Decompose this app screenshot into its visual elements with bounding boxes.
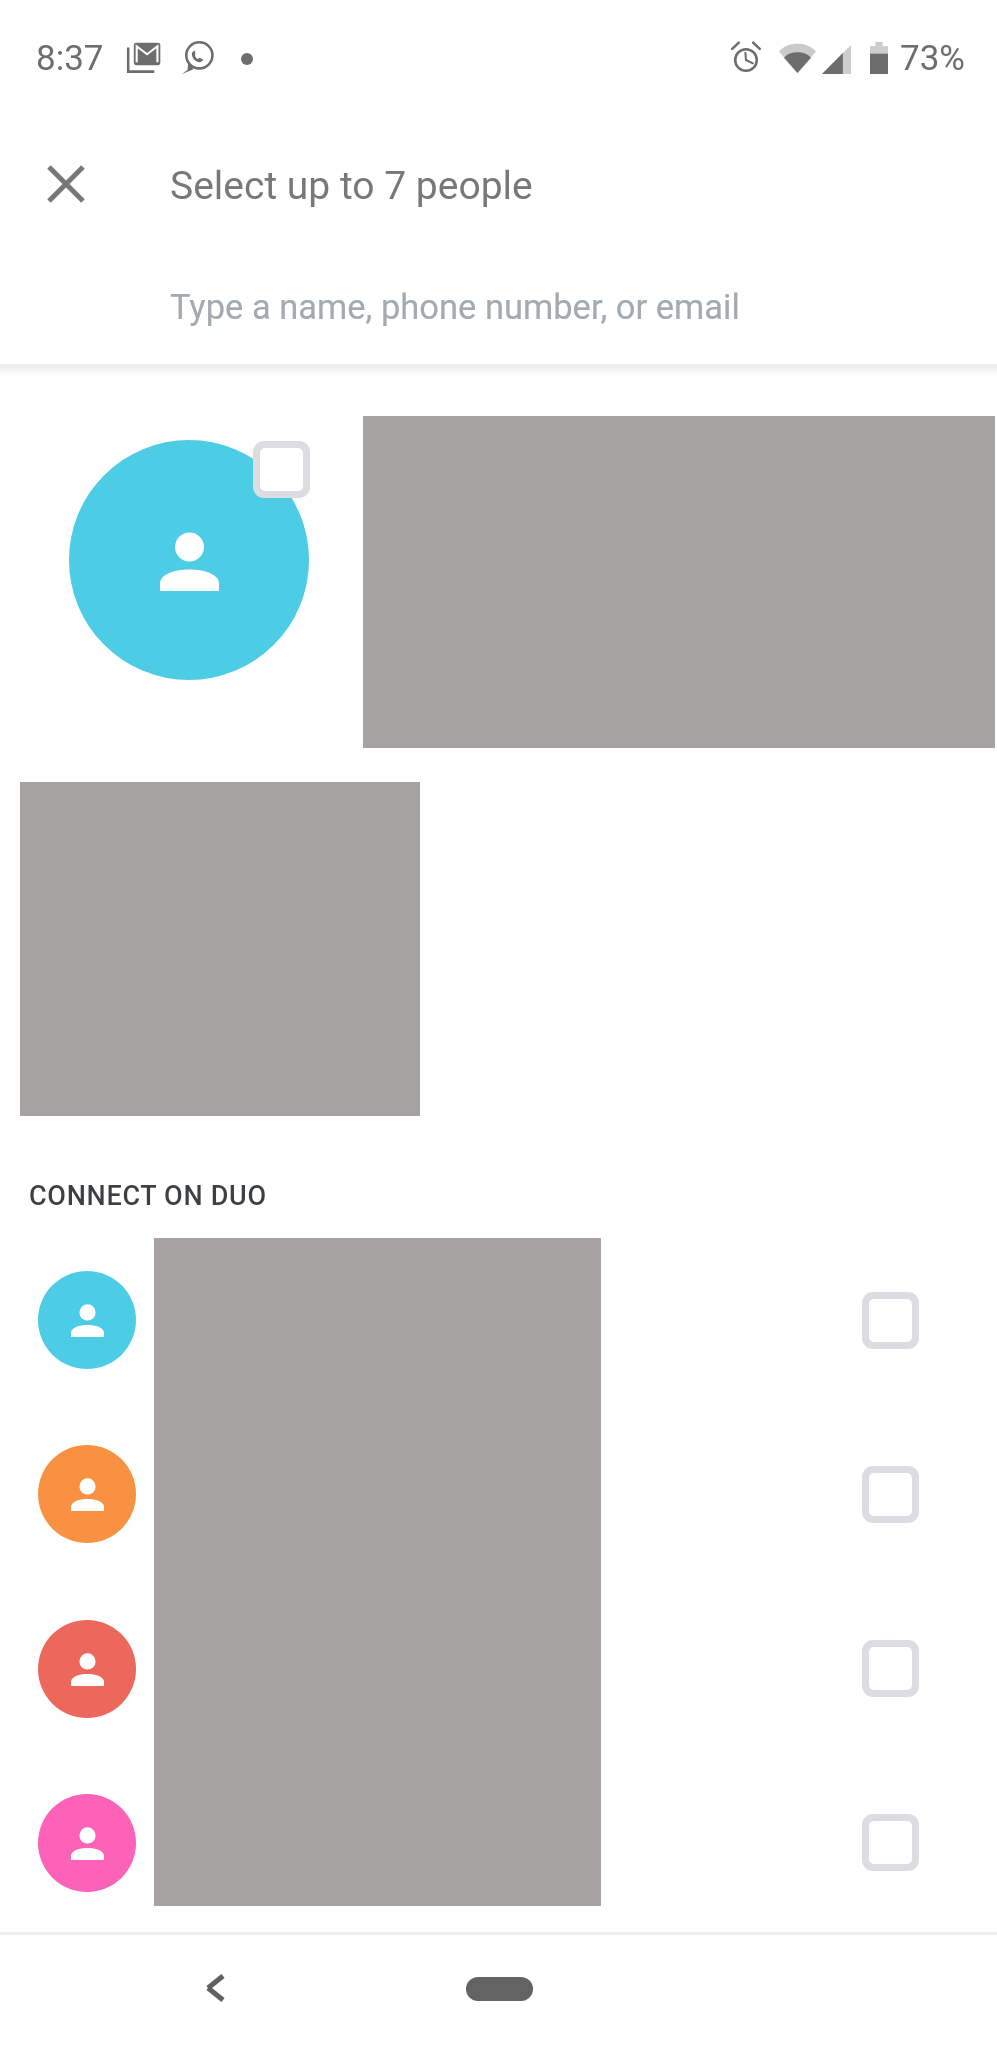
staticText: 8:37 [36,38,104,79]
staticText: Select up to 7 people [170,163,533,209]
button[interactable]: Back [171,1944,259,2032]
staticText: Type a name, phone number, or email [170,287,740,327]
button[interactable]: Home [466,1977,533,2001]
staticText: 73% [900,38,965,79]
button[interactable] [0,1233,997,1407]
button[interactable]: Close [22,140,110,228]
button[interactable]: Type a name, phone number, or email [0,250,997,364]
button[interactable] [0,1756,997,1930]
staticText: CONNECT ON DUO [29,1180,267,1212]
button[interactable] [0,1407,997,1581]
button[interactable] [69,440,309,680]
button[interactable] [0,1582,997,1756]
